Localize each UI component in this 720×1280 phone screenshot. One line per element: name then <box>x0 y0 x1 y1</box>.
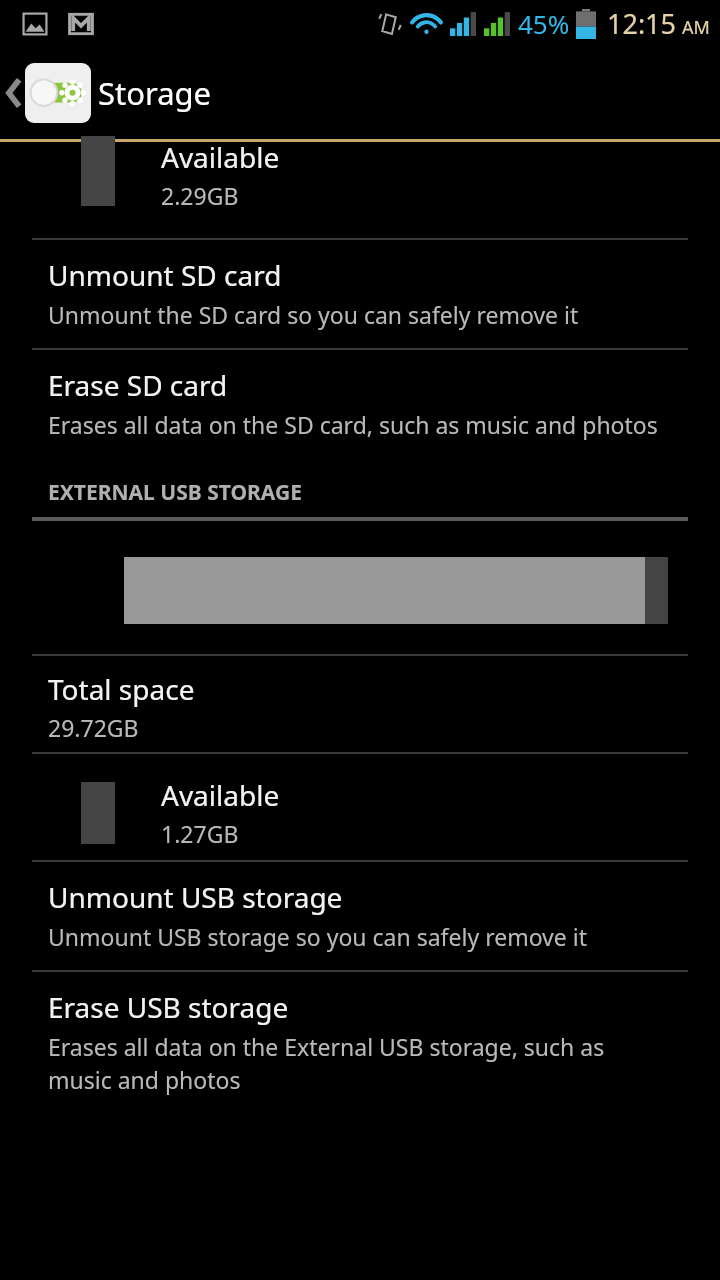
staticText: 45% <box>518 6 570 41</box>
staticText: Erases all data on the SD card, such as … <box>48 409 658 440</box>
staticText: Erase SD card <box>48 366 228 404</box>
staticText: 12:15 <box>607 5 677 42</box>
staticText: 1.27GB <box>161 818 239 849</box>
staticText: Erases all data on the External USB stor… <box>48 1031 672 1096</box>
staticText: Unmount SD card <box>48 256 282 294</box>
staticText: Unmount USB storage so you can safely re… <box>48 921 587 952</box>
staticText: EXTERNAL USB STORAGE <box>48 478 302 507</box>
button[interactable]: Erase USB storage <box>0 972 720 1114</box>
staticText: Total space <box>48 670 195 708</box>
staticText: Storage <box>98 72 212 114</box>
staticText: AM <box>682 15 710 40</box>
staticText: Unmount the SD card so you can safely re… <box>48 299 579 330</box>
staticText: Unmount USB storage <box>48 878 343 916</box>
button[interactable]: Unmount SD card <box>0 240 720 348</box>
button[interactable]: Erase SD card <box>0 350 720 458</box>
button[interactable]: Unmount USB storage <box>0 862 720 970</box>
staticText: Erase USB storage <box>48 988 289 1026</box>
staticText: Available <box>161 138 280 176</box>
staticText: 2.29GB <box>161 180 239 211</box>
button[interactable]: Navigate up <box>0 59 97 127</box>
staticText: 29.72GB <box>48 712 139 743</box>
staticText: Available <box>161 776 280 814</box>
